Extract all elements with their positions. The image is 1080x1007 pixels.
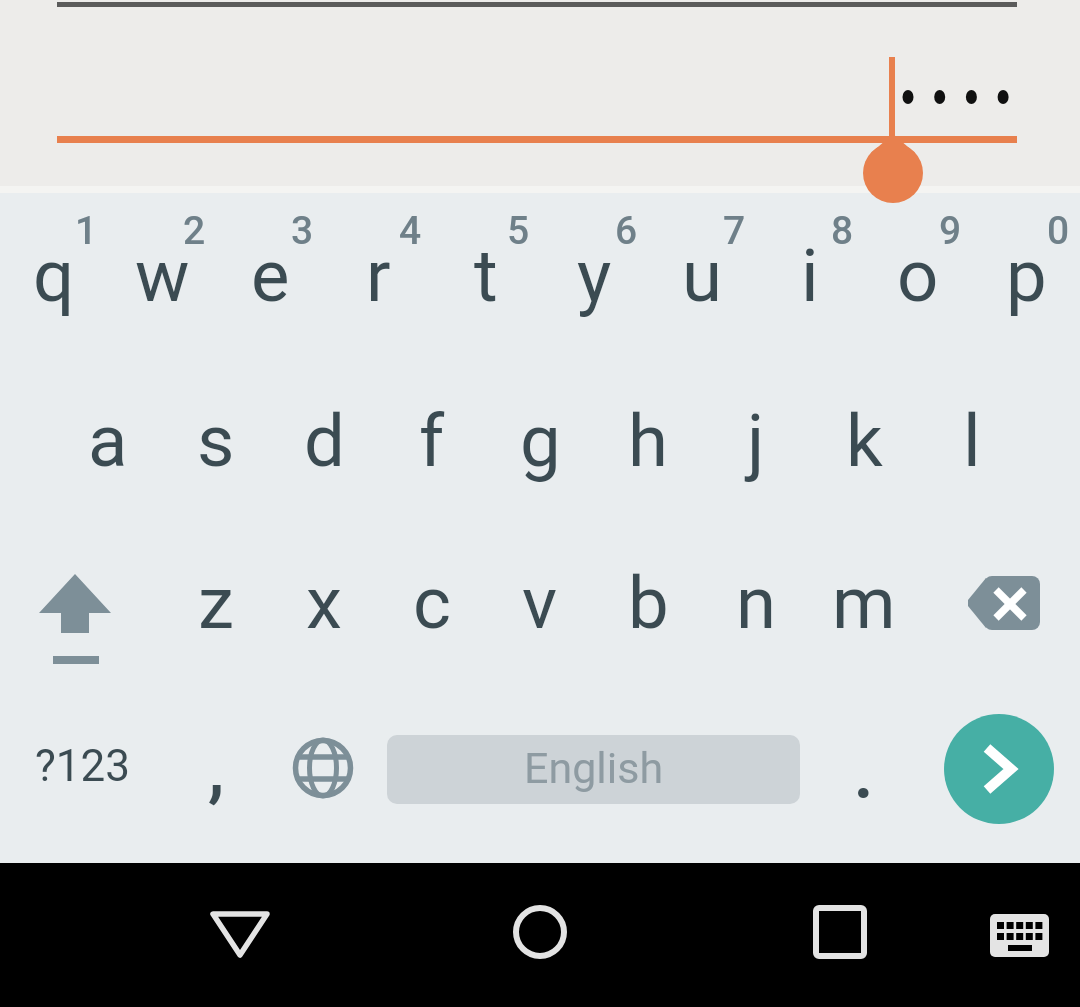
button[interactable]	[468, 871, 612, 993]
button[interactable]: b	[594, 528, 702, 678]
staticText: y	[577, 234, 612, 319]
button[interactable]: ,	[162, 693, 270, 843]
staticText: 8	[831, 208, 854, 254]
button[interactable]	[958, 871, 1080, 993]
button[interactable]: p	[972, 201, 1080, 351]
staticText: 0	[1047, 208, 1070, 254]
button[interactable]: r	[324, 201, 432, 351]
staticText: 1	[75, 208, 98, 254]
button[interactable]: d	[270, 366, 378, 516]
staticText: m	[832, 561, 896, 646]
staticText: n	[736, 561, 777, 646]
button[interactable]	[0, 528, 162, 694]
staticText: k	[846, 399, 883, 484]
staticText: j	[747, 399, 765, 484]
staticText: a	[88, 399, 128, 484]
button[interactable]: n	[702, 528, 810, 678]
button[interactable]: c	[378, 528, 486, 678]
staticText: q	[33, 234, 75, 319]
staticText: i	[801, 234, 819, 319]
button[interactable]: v	[486, 528, 594, 678]
button[interactable]: t	[432, 201, 540, 351]
button[interactable]: a	[54, 366, 162, 516]
button[interactable]: h	[594, 366, 702, 516]
button[interactable]: f	[378, 366, 486, 516]
staticText: e	[251, 234, 290, 319]
staticText: f	[419, 399, 445, 484]
button[interactable]: e	[216, 201, 324, 351]
staticText: 5	[507, 208, 530, 254]
staticText: p	[1006, 234, 1047, 319]
button[interactable]: l	[918, 366, 1026, 516]
button[interactable]: i	[756, 201, 864, 351]
button[interactable]: x	[270, 528, 378, 678]
button[interactable]: q	[0, 201, 108, 351]
button[interactable]	[938, 708, 1060, 830]
staticText: s	[197, 399, 235, 484]
button[interactable]	[168, 871, 312, 993]
staticText: ,	[208, 725, 225, 812]
staticText: 2	[183, 208, 206, 254]
staticText: 6	[615, 208, 638, 254]
button[interactable]: English	[387, 735, 800, 804]
button[interactable]: ?123	[7, 691, 157, 841]
staticText: b	[628, 561, 669, 646]
staticText: l	[963, 399, 981, 484]
staticText: ?123	[35, 740, 130, 792]
staticText: 7	[723, 208, 746, 254]
button[interactable]: y	[540, 201, 648, 351]
button[interactable]: g	[486, 366, 594, 516]
staticText: w	[135, 234, 190, 319]
button[interactable]	[270, 700, 378, 840]
button[interactable]: u	[648, 201, 756, 351]
button[interactable]: j	[702, 366, 810, 516]
staticText: o	[897, 234, 939, 319]
staticText: 3	[291, 208, 314, 254]
button[interactable]: s	[162, 366, 270, 516]
staticText: g	[520, 399, 561, 484]
staticText: u	[682, 234, 722, 319]
staticText: v	[522, 561, 558, 646]
staticText: 4	[399, 208, 422, 254]
staticText: 9	[939, 208, 962, 254]
button[interactable]: k	[810, 366, 918, 516]
button[interactable]	[768, 871, 912, 993]
button[interactable]: o	[864, 201, 972, 351]
button[interactable]: z	[162, 528, 270, 678]
staticText: r	[366, 234, 391, 319]
staticText: c	[413, 561, 451, 646]
staticText: .	[853, 726, 875, 815]
button[interactable]	[918, 528, 1080, 694]
staticText: z	[198, 561, 234, 646]
staticText: h	[628, 399, 668, 484]
button[interactable]: m	[810, 528, 918, 678]
staticText: d	[304, 399, 345, 484]
button[interactable]: w	[108, 201, 216, 351]
button[interactable]: .	[810, 695, 918, 845]
staticText: English	[524, 743, 664, 793]
staticText: x	[306, 561, 342, 646]
staticText: t	[474, 234, 498, 319]
